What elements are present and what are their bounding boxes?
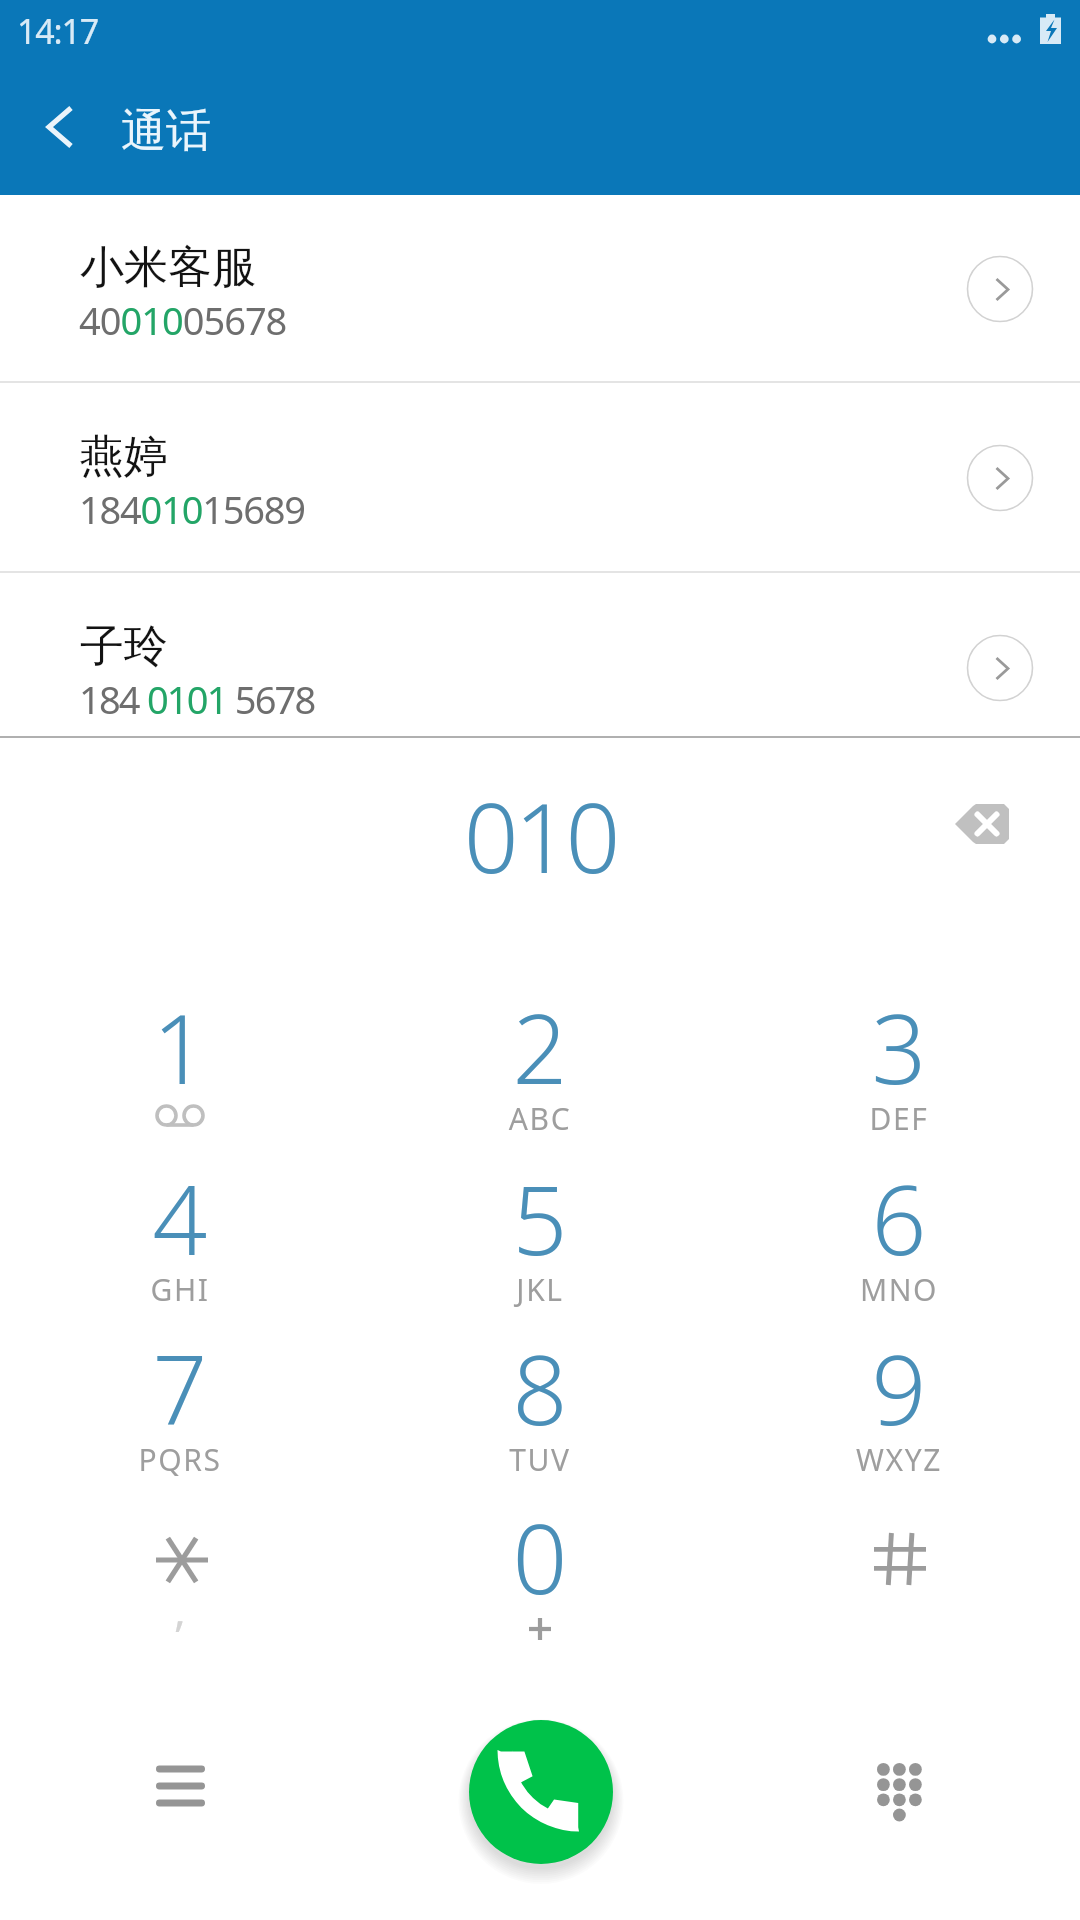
button[interactable] bbox=[90, 1322, 270, 1492]
button[interactable] bbox=[0, 573, 1080, 761]
staticText: PQRS bbox=[90, 1439, 270, 1480]
button[interactable] bbox=[450, 1491, 630, 1661]
button[interactable] bbox=[809, 1152, 989, 1322]
button[interactable]: Back bbox=[12, 77, 108, 177]
staticText: 8 bbox=[450, 1322, 630, 1453]
button[interactable]: Pound bbox=[809, 1491, 989, 1661]
button[interactable] bbox=[450, 1152, 630, 1322]
button[interactable]: Backspace bbox=[937, 778, 1029, 870]
staticText: DEF bbox=[809, 1098, 989, 1139]
button[interactable] bbox=[90, 1152, 270, 1322]
staticText: 184 0101 5678 bbox=[79, 673, 315, 725]
staticText: , bbox=[90, 1579, 270, 1639]
staticText: 2 bbox=[450, 981, 630, 1112]
button[interactable] bbox=[90, 981, 270, 1151]
button[interactable]: Call bbox=[469, 1720, 613, 1864]
staticText: 通话 bbox=[121, 103, 211, 160]
staticText: 3 bbox=[809, 981, 989, 1112]
button[interactable]: Menu bbox=[125, 1734, 235, 1844]
button[interactable]: Details bbox=[962, 630, 1038, 706]
staticText: 010 bbox=[0, 770, 1080, 901]
button[interactable] bbox=[450, 1322, 630, 1492]
staticText: 0 bbox=[450, 1491, 630, 1622]
button[interactable] bbox=[0, 194, 1080, 382]
staticText: JKL bbox=[450, 1269, 630, 1310]
staticText: 6 bbox=[809, 1152, 989, 1283]
staticText: 燕婷 bbox=[80, 429, 168, 484]
button[interactable]: Details bbox=[962, 251, 1038, 327]
staticText: ABC bbox=[450, 1098, 630, 1139]
button[interactable] bbox=[0, 383, 1080, 571]
staticText: MNO bbox=[809, 1269, 989, 1310]
staticText: 4 bbox=[90, 1152, 270, 1283]
staticText: 4001005678 bbox=[79, 294, 287, 346]
staticText: 14:17 bbox=[17, 8, 98, 54]
button[interactable]: Star bbox=[90, 1491, 270, 1661]
staticText: WXYZ bbox=[809, 1439, 989, 1480]
staticText: 小米客服 bbox=[80, 240, 256, 295]
staticText: 5 bbox=[450, 1152, 630, 1283]
staticText: 9 bbox=[809, 1322, 989, 1453]
staticText: 18401015689 bbox=[79, 483, 305, 535]
staticText: 1 bbox=[90, 981, 270, 1112]
button[interactable] bbox=[450, 981, 630, 1151]
button[interactable] bbox=[809, 981, 989, 1151]
button[interactable]: Dialpad bbox=[844, 1734, 954, 1844]
staticText: GHI bbox=[90, 1269, 270, 1310]
staticText: TUV bbox=[450, 1439, 630, 1480]
staticText: 7 bbox=[90, 1322, 270, 1453]
button[interactable]: Details bbox=[962, 440, 1038, 516]
button[interactable] bbox=[809, 1322, 989, 1492]
staticText: 子玲 bbox=[80, 619, 168, 674]
